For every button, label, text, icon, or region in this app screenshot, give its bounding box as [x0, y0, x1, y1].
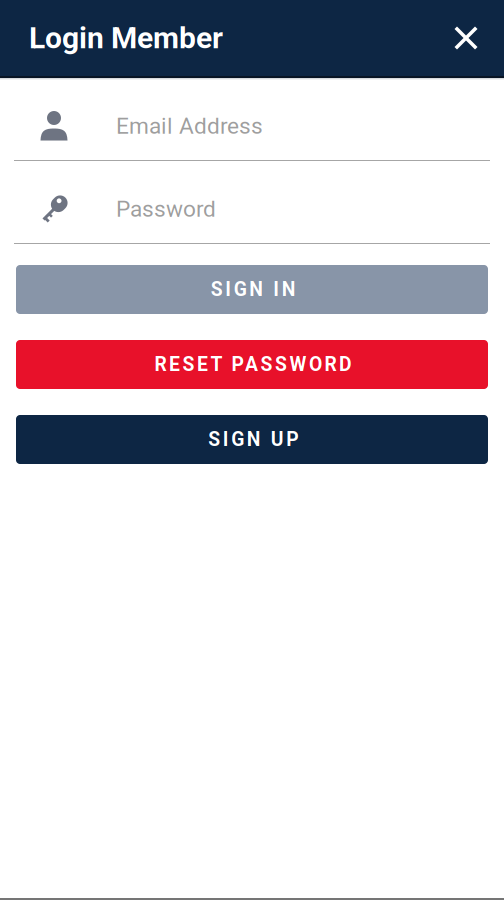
- staticText: RESET PASSWORD: [154, 353, 352, 376]
- staticText: SIGN IN: [211, 278, 296, 301]
- button[interactable]: SIGN IN: [16, 265, 488, 314]
- button[interactable]: SIGN UP: [16, 415, 488, 464]
- staticText: Email Address: [116, 113, 263, 139]
- button[interactable]: Close: [444, 16, 488, 60]
- staticText: Password: [116, 196, 216, 222]
- staticText: Login Member: [29, 20, 223, 56]
- staticText: SIGN UP: [208, 428, 298, 451]
- button[interactable]: RESET PASSWORD: [16, 340, 488, 389]
